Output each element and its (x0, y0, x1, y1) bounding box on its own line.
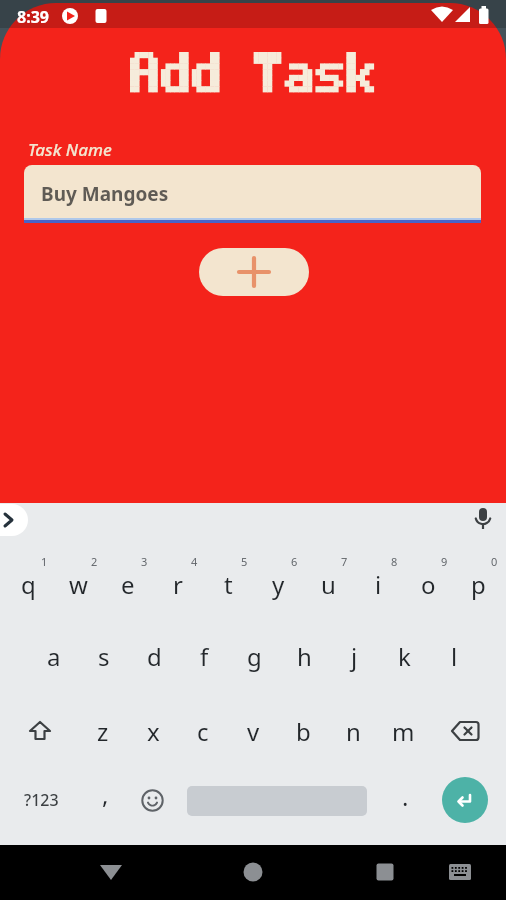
button[interactable]: z (80, 701, 126, 761)
button[interactable]: r (155, 554, 201, 614)
button[interactable] (0, 504, 28, 536)
staticText: d (147, 640, 162, 673)
button[interactable]: v (230, 701, 276, 761)
staticText: 4 (191, 554, 198, 569)
staticText: a (47, 640, 61, 673)
button[interactable]: c (180, 701, 226, 761)
staticText: 5 (241, 554, 248, 569)
button[interactable]: s (81, 626, 127, 686)
button[interactable] (240, 859, 266, 885)
button[interactable]: k (381, 626, 427, 686)
staticText: y (272, 568, 285, 601)
staticText: j (351, 640, 358, 673)
staticText: m (392, 715, 415, 748)
staticText: g (247, 640, 262, 673)
staticText: o (421, 568, 436, 601)
staticText: k (398, 640, 411, 673)
button[interactable] (442, 777, 488, 823)
button[interactable]: j (331, 626, 377, 686)
button[interactable]: w (55, 554, 101, 614)
button[interactable]: ?123 (14, 780, 68, 820)
button[interactable] (137, 785, 167, 815)
staticText: 8 (391, 554, 398, 569)
staticText: i (375, 568, 382, 601)
staticText: u (321, 568, 336, 601)
staticText: e (121, 568, 135, 601)
staticText: ?123 (24, 789, 59, 811)
button[interactable] (470, 506, 496, 534)
button[interactable]: x (130, 701, 176, 761)
button[interactable]: p (455, 554, 501, 614)
button[interactable] (372, 860, 398, 884)
button[interactable]: l (431, 626, 477, 686)
button[interactable] (96, 860, 126, 884)
button[interactable]: e (105, 554, 151, 614)
staticText: 8:39 (17, 6, 49, 28)
staticText: x (147, 715, 160, 748)
staticText: 1 (41, 554, 48, 569)
staticText: v (247, 715, 260, 748)
button[interactable]: . (390, 780, 420, 820)
button[interactable]: n (330, 701, 376, 761)
button[interactable]: y (255, 554, 301, 614)
staticText: Buy Mangoes (41, 181, 169, 207)
staticText: q (21, 568, 36, 601)
staticText: . (402, 780, 409, 813)
staticText: , (102, 778, 109, 811)
button[interactable] (447, 861, 473, 883)
staticText: p (471, 568, 486, 601)
staticText: 6 (291, 554, 298, 569)
staticText: 2 (91, 554, 98, 569)
button[interactable] (443, 712, 487, 750)
staticText: 7 (341, 554, 348, 569)
button[interactable]: u (305, 554, 351, 614)
button[interactable]: , (90, 780, 120, 820)
staticText: s (98, 640, 110, 673)
staticText: h (297, 640, 312, 673)
staticText: w (69, 568, 88, 601)
button[interactable]: b (280, 701, 326, 761)
button[interactable]: a (31, 626, 77, 686)
button[interactable]: Buy Mangoes (24, 165, 481, 223)
button[interactable]: o (405, 554, 451, 614)
staticText: r (173, 568, 183, 601)
button[interactable] (199, 248, 309, 296)
staticText: 0 (491, 554, 498, 569)
button[interactable]: f (181, 626, 227, 686)
button[interactable]: t (205, 554, 251, 614)
button[interactable]: q (5, 554, 51, 614)
staticText: f (200, 640, 209, 673)
staticText: 3 (141, 554, 148, 569)
staticText: c (197, 715, 209, 748)
staticText: l (451, 640, 458, 673)
staticText: t (224, 568, 233, 601)
staticText: n (346, 715, 361, 748)
button[interactable] (18, 712, 62, 750)
button[interactable]: h (281, 626, 327, 686)
button[interactable]: d (131, 626, 177, 686)
staticText: 9 (441, 554, 448, 569)
staticText: z (97, 715, 109, 748)
staticText: Task Name (28, 138, 112, 161)
staticText: b (296, 715, 311, 748)
button[interactable]: g (231, 626, 277, 686)
button[interactable]: m (380, 701, 426, 761)
button[interactable]: i (355, 554, 401, 614)
